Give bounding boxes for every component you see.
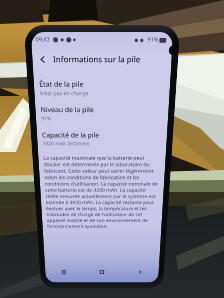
staticText: 3920 mAh (estimée) xyxy=(42,140,90,147)
button[interactable]: Back xyxy=(120,267,159,277)
staticText: 91% xyxy=(147,36,159,44)
staticText: 09:43 xyxy=(35,36,50,44)
button[interactable]: Back xyxy=(35,52,50,67)
staticText: Informations sur la pile xyxy=(53,53,141,65)
staticText: N'est pas en charge xyxy=(39,90,88,97)
staticText: 91% xyxy=(41,115,52,122)
button[interactable]: Recents xyxy=(45,267,83,277)
button[interactable]: État de la pile xyxy=(33,77,170,103)
staticText: La capacité maximale que la batterie peu… xyxy=(43,154,160,229)
staticText: Capacité de la pile xyxy=(42,130,100,139)
staticText: État de la pile xyxy=(39,79,84,89)
button[interactable]: Capacité de la pile xyxy=(37,128,167,152)
staticText: Niveau de la pile xyxy=(40,105,95,114)
button[interactable]: Niveau de la pile xyxy=(35,103,169,127)
button[interactable]: Home xyxy=(82,267,121,277)
